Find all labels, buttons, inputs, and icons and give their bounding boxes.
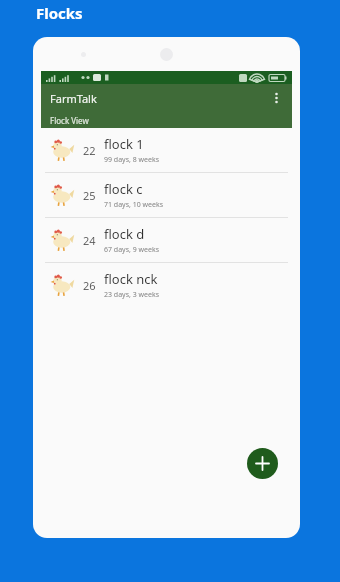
staticText: 22	[83, 143, 96, 158]
button[interactable]: 26	[41, 263, 292, 307]
staticText: 24	[83, 233, 96, 248]
staticText: flock c	[104, 180, 143, 198]
staticText: 25	[83, 188, 96, 203]
button[interactable]: Flock View	[41, 112, 292, 128]
button[interactable]: Add flock	[247, 448, 278, 479]
staticText: 99 days, 8 weeks	[104, 155, 159, 165]
staticText: flock nck	[104, 270, 158, 288]
button[interactable]: 24	[41, 218, 292, 262]
staticText: 71 days, 10 weeks	[104, 200, 163, 210]
staticText: 67 days, 9 weeks	[104, 245, 159, 255]
button[interactable]: More options	[264, 86, 288, 110]
staticText: Flock View	[50, 115, 89, 126]
staticText: 26	[83, 278, 96, 293]
staticText: Flocks	[36, 3, 83, 23]
button[interactable]: 22	[41, 128, 292, 172]
staticText: flock 1	[104, 135, 144, 153]
staticText: FarmTalk	[50, 91, 97, 106]
button[interactable]: 25	[41, 173, 292, 217]
staticText: 23 days, 3 weeks	[104, 290, 159, 300]
staticText: flock d	[104, 225, 145, 243]
